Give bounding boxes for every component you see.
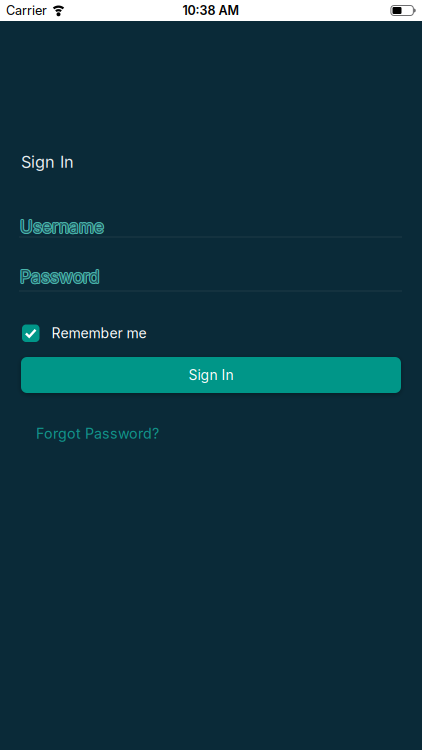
- staticText: Username: [19, 217, 103, 238]
- staticText: Username: [21, 216, 105, 237]
- staticText: Password: [21, 267, 100, 288]
- staticText: Password: [21, 266, 100, 287]
- button[interactable]: Username: [0, 216, 422, 237]
- staticText: Username: [19, 216, 103, 236]
- staticText: Username: [20, 216, 104, 237]
- staticText: Username: [19, 216, 103, 237]
- staticText: Password: [19, 266, 98, 287]
- staticText: Password: [19, 267, 98, 288]
- staticText: Username: [21, 216, 105, 236]
- staticText: Password: [19, 266, 98, 286]
- staticText: Password: [20, 267, 99, 288]
- staticText: Carrier: [6, 3, 47, 18]
- staticText: Username: [21, 217, 105, 238]
- staticText: Forgot Password?: [36, 425, 159, 442]
- button[interactable]: Forgot Password?: [36, 425, 159, 442]
- button[interactable]: Sign In: [0, 357, 422, 393]
- staticText: Sign In: [188, 367, 233, 383]
- staticText: Password: [20, 266, 99, 287]
- staticText: Username: [20, 217, 104, 238]
- staticText: Username: [20, 215, 104, 236]
- staticText: 10:38 AM: [182, 3, 239, 18]
- staticText: Password: [21, 266, 100, 286]
- staticText: Password: [20, 265, 99, 286]
- staticText: Remember me: [51, 325, 146, 342]
- staticText: Sign In: [21, 152, 74, 172]
- button[interactable]: Password: [0, 266, 422, 291]
- button[interactable]: Remember me: [0, 324, 146, 342]
